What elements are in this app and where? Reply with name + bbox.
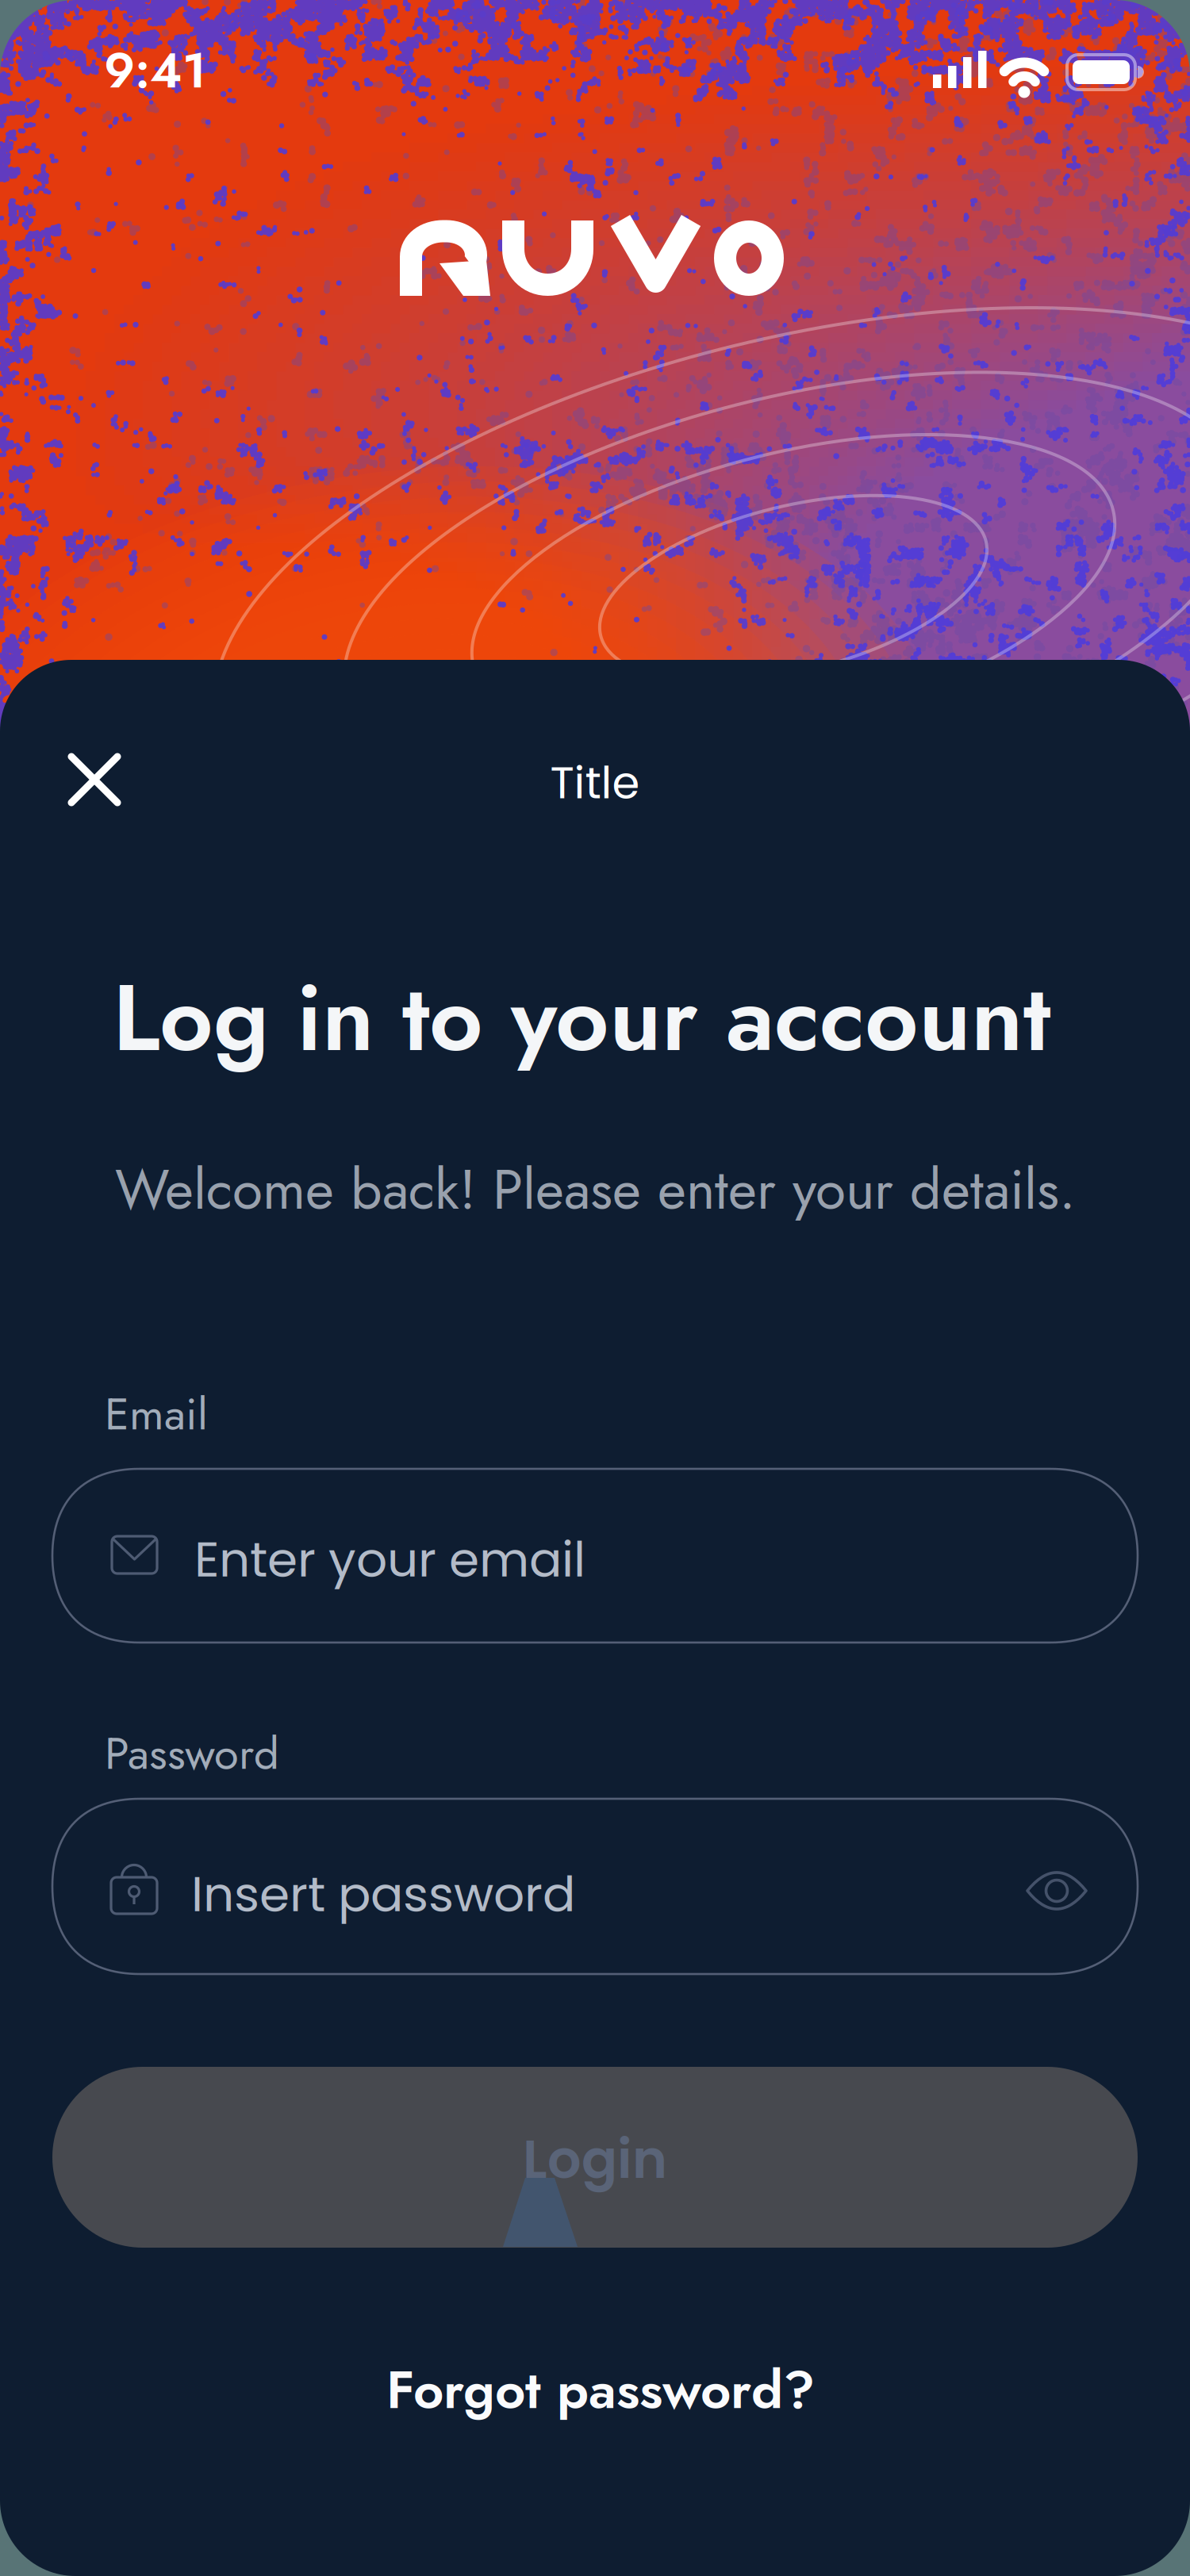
staticText: Welcome back! Please enter your details. xyxy=(115,1150,1076,1229)
staticText: Login xyxy=(523,2122,667,2196)
staticText: 9:41 xyxy=(104,35,206,106)
button[interactable]: Login xyxy=(52,2067,1138,2248)
staticText: Log in to your account xyxy=(113,951,1050,1085)
staticText: Insert password xyxy=(191,1860,575,1928)
button[interactable]: Show password xyxy=(1022,1866,1092,1915)
staticText: Enter your email xyxy=(194,1525,585,1594)
button[interactable]: Forgot password? xyxy=(386,2351,815,2428)
staticText: Forgot password? xyxy=(386,2351,815,2428)
staticText: Title xyxy=(550,752,640,814)
staticText: Password xyxy=(105,1721,279,1786)
button[interactable]: Close xyxy=(69,754,120,805)
staticText: Email xyxy=(105,1382,208,1446)
